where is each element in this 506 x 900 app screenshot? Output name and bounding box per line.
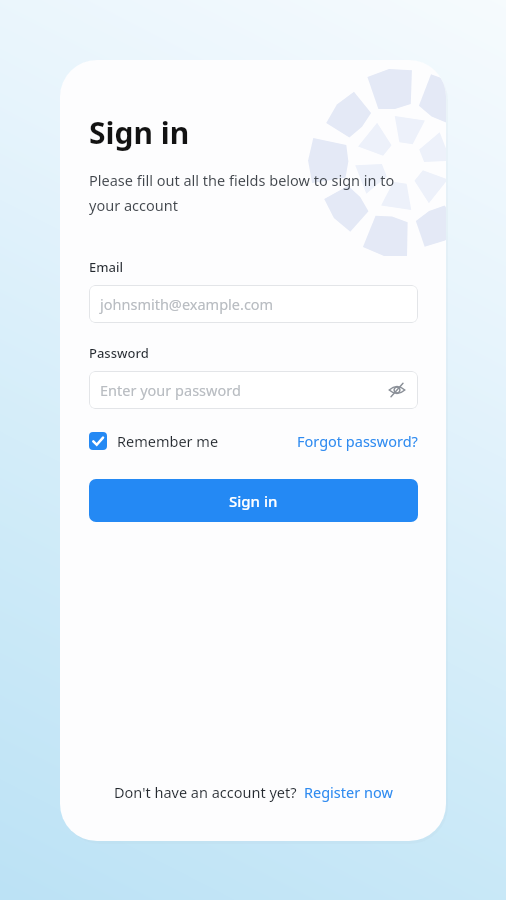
button[interactable]: Sign in	[89, 479, 418, 522]
staticText: Password	[89, 344, 149, 362]
staticText: Remember me	[117, 431, 219, 451]
button[interactable]: johnsmith@example.com	[89, 285, 418, 323]
staticText: Please fill out all the fields below to …	[89, 170, 418, 215]
staticText: Forgot password?	[297, 431, 418, 451]
button[interactable]: Register now	[304, 782, 393, 802]
button[interactable]: Show password	[387, 380, 407, 400]
staticText: Email	[89, 258, 124, 276]
staticText: Sign in	[229, 491, 278, 511]
staticText: Enter your password	[100, 380, 387, 400]
staticText: johnsmith@example.com	[100, 294, 407, 314]
button[interactable]: Remember me	[89, 431, 219, 451]
button[interactable]: Enter your password	[89, 371, 418, 409]
staticText: Register now	[304, 782, 393, 802]
staticText: Sign in	[89, 112, 190, 153]
staticText: Don't have an account yet?	[114, 782, 297, 802]
button[interactable]: Forgot password?	[297, 431, 418, 451]
